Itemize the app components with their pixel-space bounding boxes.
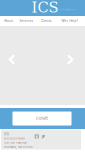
staticText: Immigrant Counseling Service [54,9,75,10]
button[interactable]: Services [16,16,37,26]
button[interactable]: Why Help? [59,16,80,26]
staticText: (503)221-1689 [4,137,25,140]
staticText: Clients [41,19,52,23]
staticText: Donate [36,116,48,121]
staticText: About [4,19,13,23]
button[interactable]: Next slide [67,54,73,65]
staticText: Portland, OR 97205 [4,145,33,149]
button[interactable]: About [0,16,19,26]
staticText: Services [19,19,33,23]
staticText: Why Help? [61,19,78,23]
staticText: ICS [4,132,9,136]
button[interactable]: Facebook [34,134,39,139]
staticText: ICS [31,0,58,16]
staticText: 519 SW Park Ave [4,141,27,144]
button[interactable]: Donate [12,111,71,125]
button[interactable]: Twitter [41,134,46,139]
button[interactable]: Clients [36,16,57,26]
button[interactable]: Previous slide [9,54,15,65]
